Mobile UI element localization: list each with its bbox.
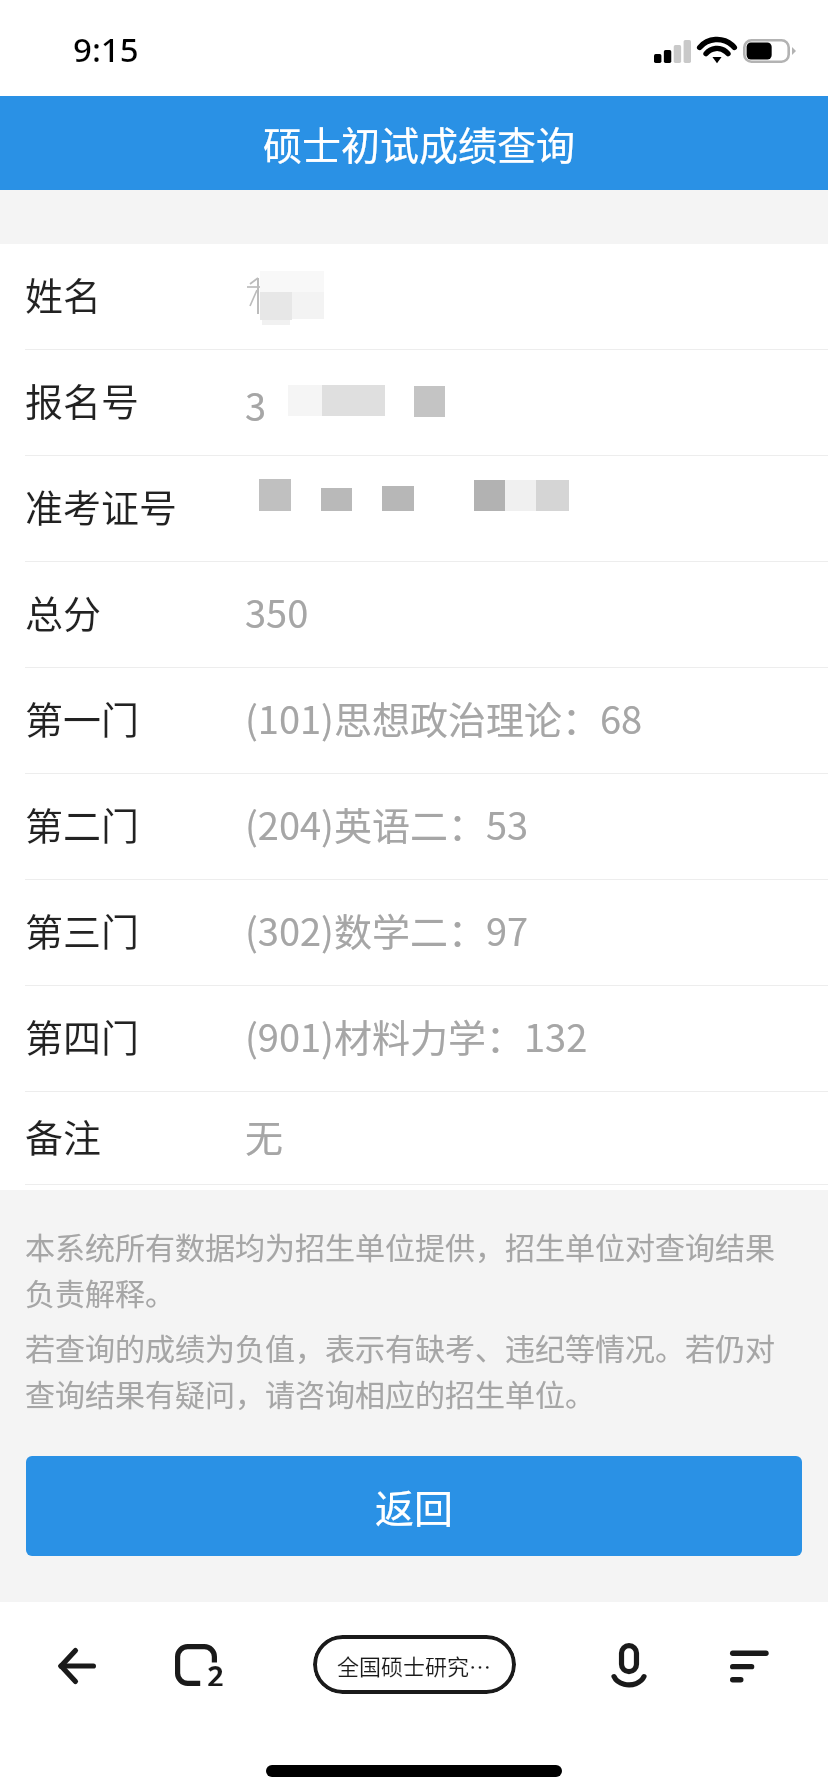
button[interactable]: 总分 bbox=[0, 562, 828, 667]
staticText: 报名号 bbox=[25, 372, 140, 427]
staticText: 姓名 bbox=[25, 266, 102, 321]
button[interactable]: Tabs bbox=[137, 1606, 257, 1726]
staticText: 准考证号 bbox=[25, 478, 178, 533]
staticText: 备注 bbox=[25, 1108, 102, 1163]
staticText: 无 bbox=[245, 1108, 284, 1163]
staticText: 9:15 bbox=[73, 27, 139, 72]
staticText: 本系统所有数据均为招生单位提供，招生单位对查询结果负责解释。 bbox=[25, 1224, 803, 1313]
button[interactable]: 第一门 bbox=[0, 668, 828, 773]
button[interactable]: 第四门 bbox=[0, 986, 828, 1091]
staticText: 3 bbox=[245, 377, 267, 432]
button[interactable]: 返回 bbox=[26, 1456, 802, 1556]
staticText: 硕士初试成绩查询 bbox=[263, 115, 576, 171]
staticText: 第一门 bbox=[25, 690, 140, 745]
button[interactable]: 报名号 bbox=[0, 350, 828, 455]
staticText: 第二门 bbox=[25, 796, 140, 851]
staticText: 第四门 bbox=[25, 1008, 140, 1063]
staticText: (302)数学二：97 bbox=[245, 902, 529, 957]
staticText: 350 bbox=[245, 584, 309, 639]
staticText: 若查询的成绩为负值，表示有缺考、违纪等情况。若仍对查询结果有疑问，请咨询相应的招… bbox=[25, 1325, 803, 1414]
staticText: 返回 bbox=[375, 1478, 454, 1534]
staticText: (101)思想政治理论：68 bbox=[245, 690, 643, 745]
staticText: (901)材料力学：132 bbox=[245, 1008, 588, 1063]
staticText: 第三门 bbox=[25, 902, 140, 957]
button[interactable]: 姓名 bbox=[0, 244, 828, 349]
button[interactable]: 第二门 bbox=[0, 774, 828, 879]
staticText: (204)英语二：53 bbox=[245, 796, 529, 851]
button[interactable]: 全国硕士研究… bbox=[313, 1635, 516, 1694]
button[interactable]: Menu bbox=[688, 1606, 808, 1726]
button[interactable]: 准考证号 bbox=[0, 456, 828, 561]
button[interactable]: Back bbox=[17, 1606, 137, 1726]
button[interactable]: Voice search bbox=[569, 1606, 689, 1726]
button[interactable]: 第三门 bbox=[0, 880, 828, 985]
button[interactable]: 备注 bbox=[0, 1092, 828, 1184]
staticText: 全国硕士研究… bbox=[337, 1649, 492, 1681]
staticText: 2 bbox=[207, 1656, 224, 1686]
staticText: 总分 bbox=[25, 584, 102, 639]
